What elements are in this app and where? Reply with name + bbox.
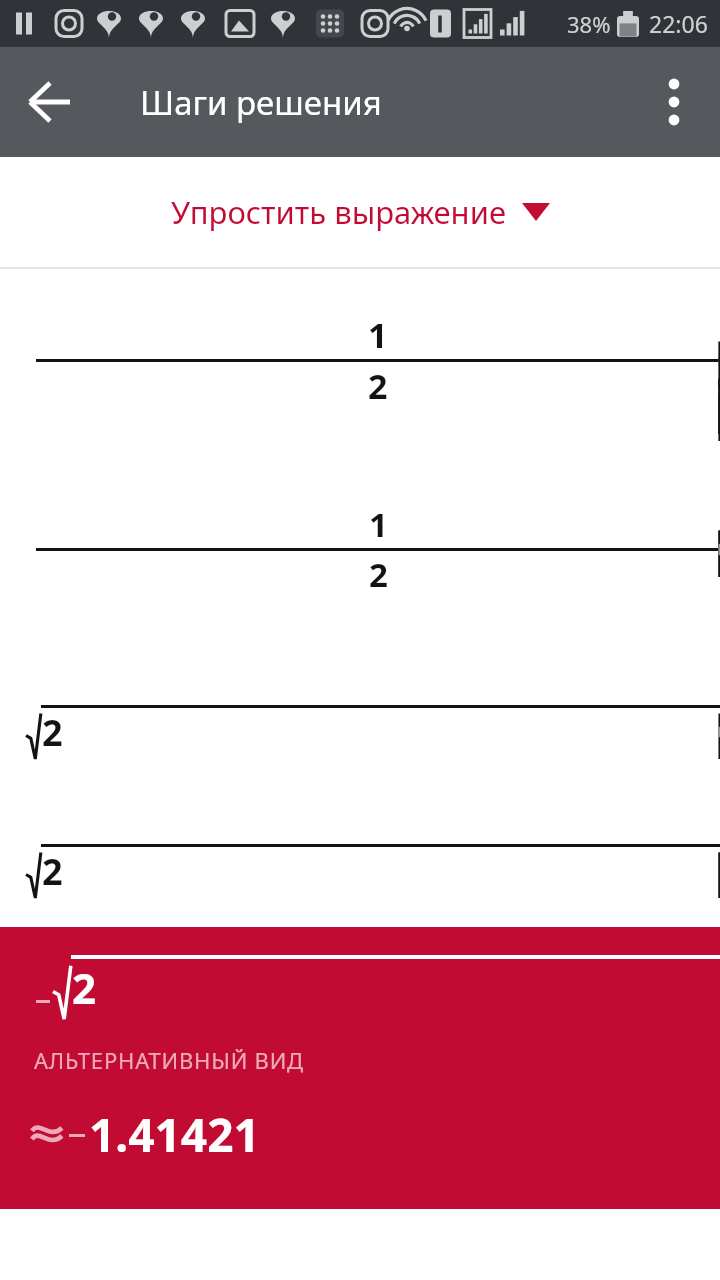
staticText: 22:06	[649, 8, 708, 39]
staticText: 2	[368, 363, 388, 409]
staticText: Шаги решения	[140, 80, 382, 125]
button[interactable]: Ещё	[646, 74, 702, 130]
staticText: 38%	[567, 9, 611, 39]
staticText: 2	[72, 959, 97, 1016]
staticText: 1	[369, 502, 388, 547]
staticText: Упростить выражение	[171, 191, 506, 233]
staticText: 1.41421	[89, 1103, 260, 1166]
button[interactable]: 2	[0, 927, 720, 1209]
button[interactable]: Назад	[20, 72, 80, 132]
staticText: 2	[42, 847, 63, 896]
staticText: 1	[368, 312, 388, 358]
staticText: 2	[42, 708, 63, 757]
staticText: 2	[369, 552, 388, 597]
staticText: АЛЬТЕРНАТИВНЫЙ ВИД	[34, 1045, 304, 1075]
button[interactable]: Упростить выражение	[0, 157, 720, 267]
